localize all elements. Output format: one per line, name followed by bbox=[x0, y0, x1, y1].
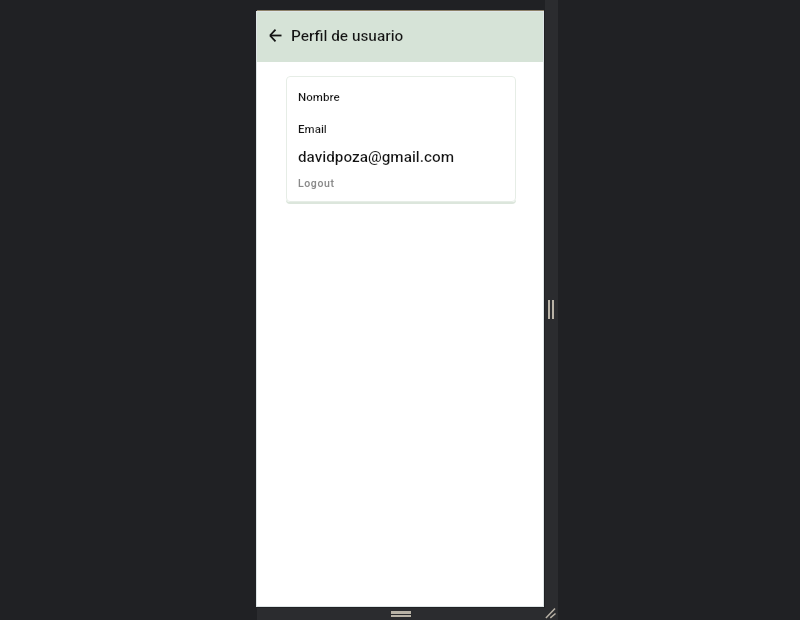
staticText: Email bbox=[298, 122, 327, 136]
button[interactable]: Back bbox=[261, 21, 289, 49]
button[interactable]: Resize height bbox=[257, 608, 558, 620]
button[interactable]: Resize width bbox=[545, 0, 558, 620]
staticText: Nombre bbox=[298, 90, 340, 104]
staticText: Logout bbox=[298, 177, 335, 189]
button[interactable]: Resize viewport bbox=[544, 606, 558, 620]
staticText: davidpoza@gmail.com bbox=[298, 148, 454, 166]
button[interactable]: Logout bbox=[295, 177, 338, 189]
staticText: Perfil de usuario bbox=[291, 27, 404, 45]
